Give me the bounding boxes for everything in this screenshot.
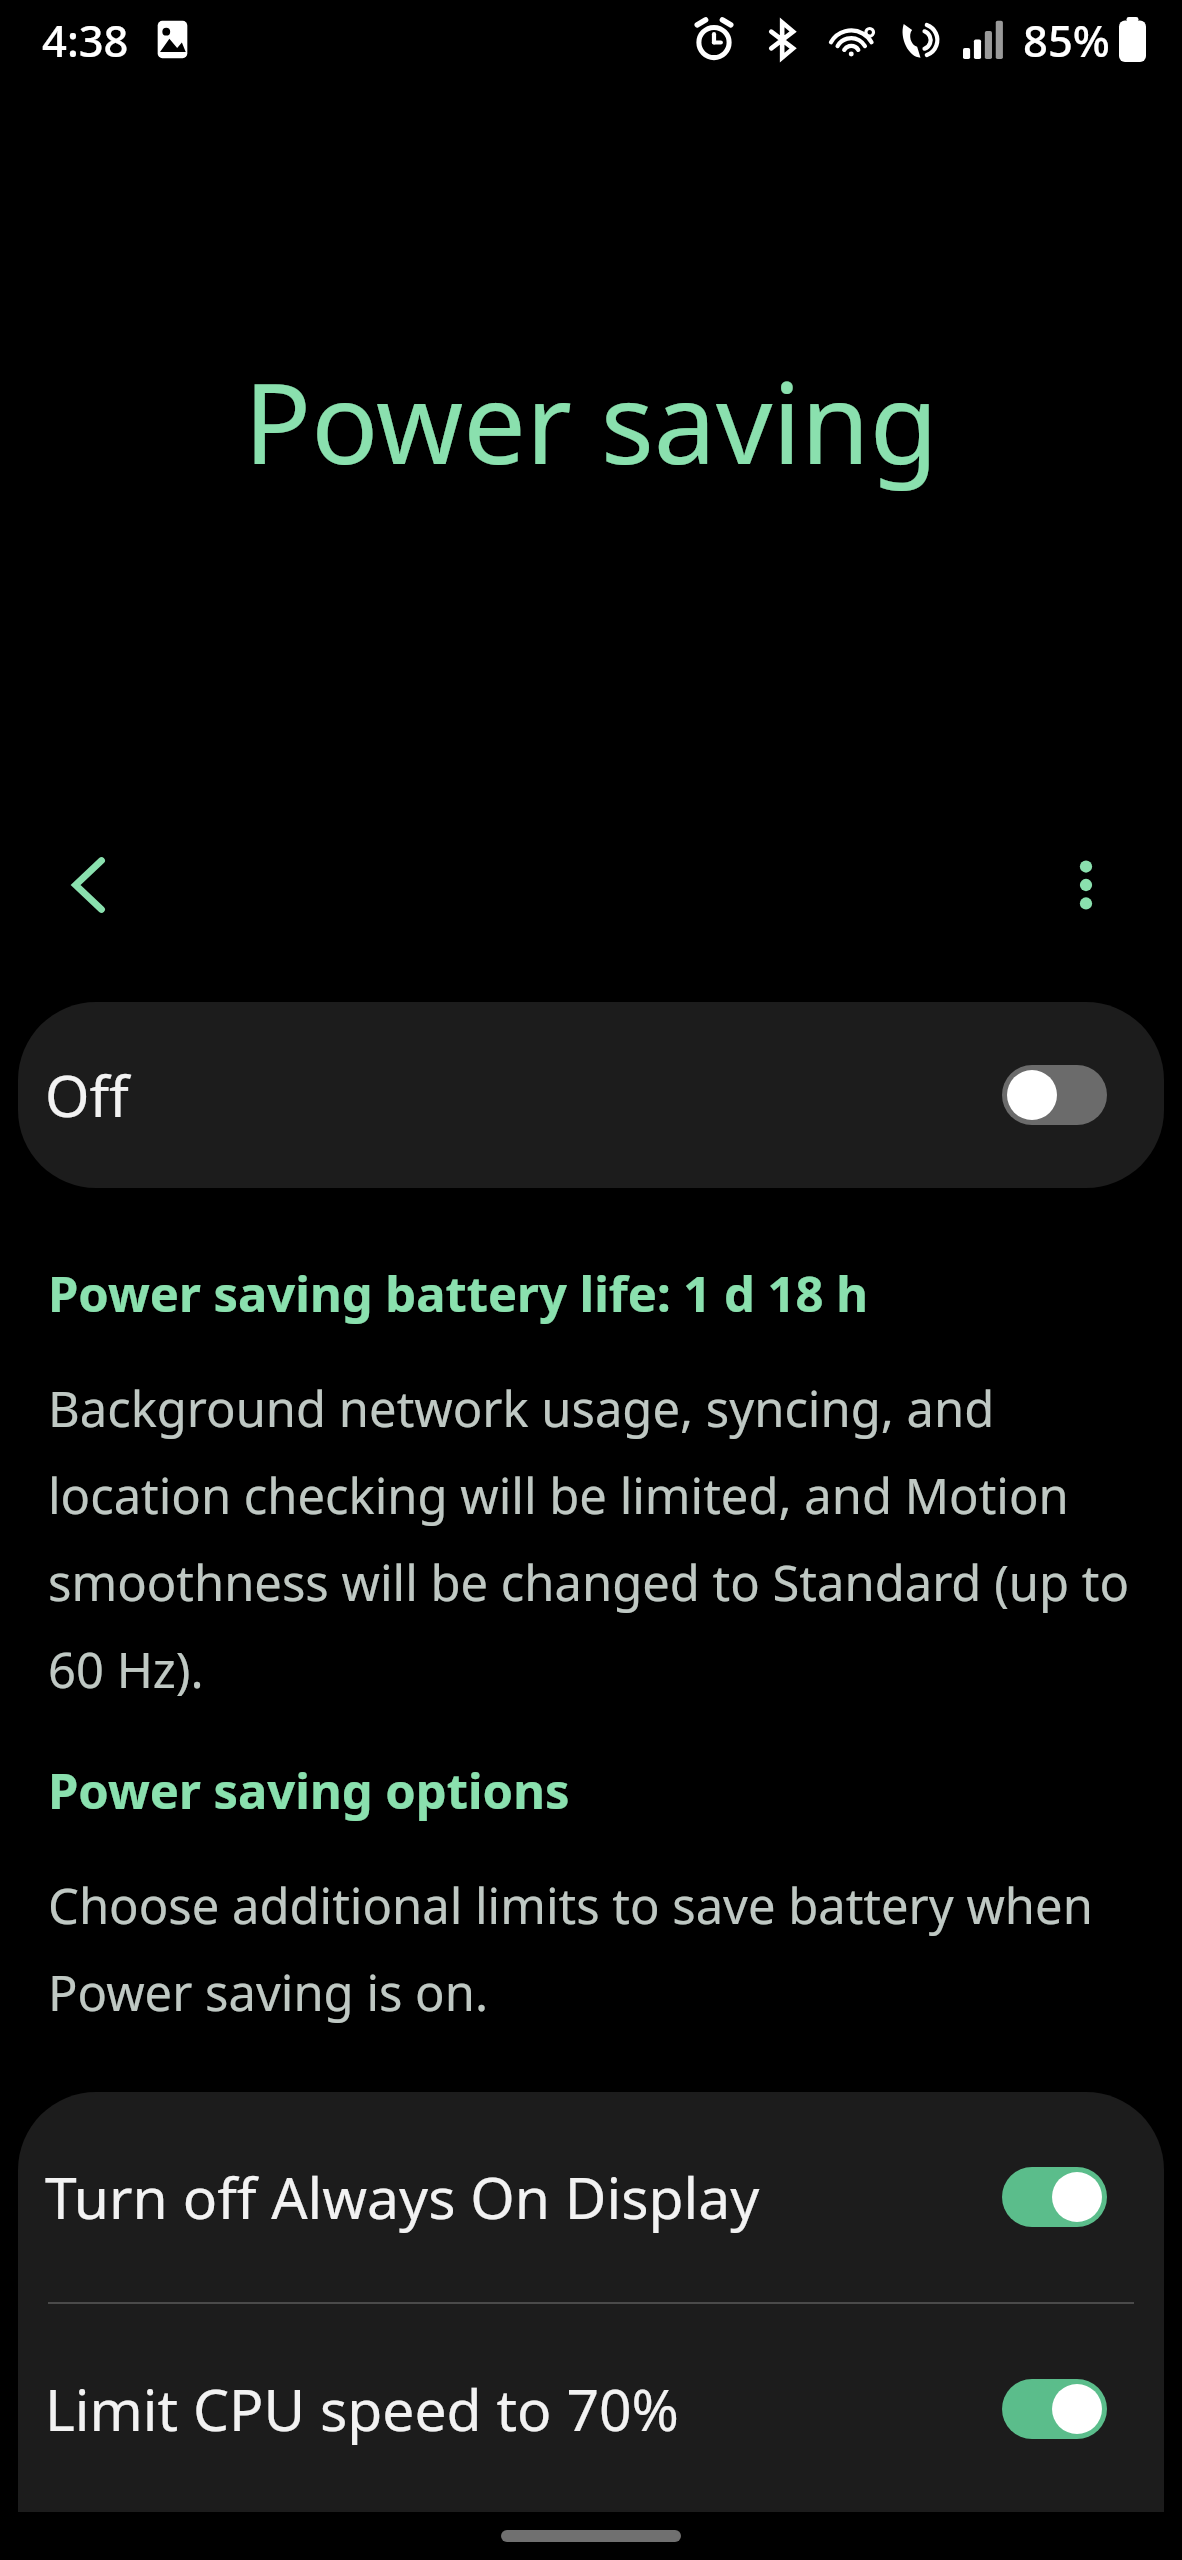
staticText: 4:38 xyxy=(42,10,129,69)
staticText: Power saving options xyxy=(48,1757,570,1824)
button[interactable] xyxy=(1002,2379,1107,2439)
button[interactable] xyxy=(1002,2167,1107,2227)
button[interactable]: Off xyxy=(18,1002,1164,1188)
button[interactable] xyxy=(1002,1065,1107,1125)
staticText: 85% xyxy=(1023,10,1110,69)
staticText: Limit CPU speed to 70% xyxy=(45,2370,679,2448)
button[interactable]: Back xyxy=(18,813,162,957)
staticText: Power saving battery life: 1 d 18 h xyxy=(48,1260,869,1327)
staticText: Decrease brightness by 10% xyxy=(45,2516,799,2560)
button[interactable]: Turn off Always On Display xyxy=(18,2092,1164,2302)
button[interactable]: More options xyxy=(1014,813,1158,957)
button[interactable]: Decrease brightness by 10% xyxy=(18,2516,1164,2560)
button[interactable]: Limit CPU speed to 70% xyxy=(18,2304,1164,2514)
staticText: Choose additional limits to save battery… xyxy=(48,1872,1134,2026)
staticText: Background network usage, syncing, and l… xyxy=(48,1375,1134,1703)
staticText: Turn off Always On Display xyxy=(45,2158,760,2236)
staticText: Power saving xyxy=(244,345,938,496)
staticText: Off xyxy=(45,1056,129,1134)
